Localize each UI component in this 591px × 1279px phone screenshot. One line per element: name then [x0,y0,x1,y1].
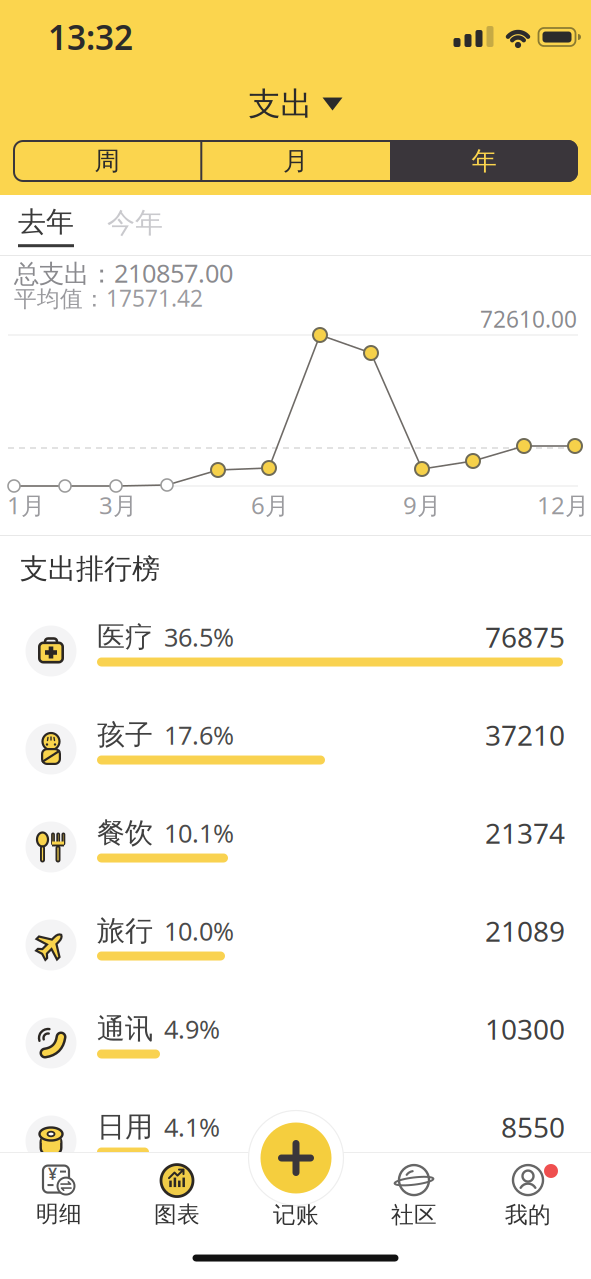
button[interactable]: ¥ [36,1164,82,1228]
button[interactable]: 社区 [391,1163,437,1229]
button[interactable]: 今年 [107,206,163,240]
button[interactable]: 记账 [260,1122,331,1193]
staticText: 支出排行榜 [20,552,160,586]
button[interactable]: 去年 [18,205,74,247]
staticText: 21374 [485,814,565,852]
staticText: 10.1% [164,816,234,850]
staticText: 9月 [403,489,441,521]
staticText: 支出 [248,84,312,124]
button[interactable]: 日用 [0,1092,591,1190]
button[interactable]: 月 [202,140,388,182]
staticText: 10300 [485,1010,565,1048]
staticText: 去年 [18,205,74,239]
button[interactable]: 餐饮 [0,798,591,896]
button[interactable]: 我的 [504,1165,556,1227]
button[interactable]: 支出 [248,84,342,124]
staticText: 周 [94,145,119,176]
button[interactable]: 图表 [154,1164,200,1228]
staticText: 4.1% [164,1110,220,1144]
staticText: 图表 [154,1201,200,1228]
staticText: 8550 [501,1108,565,1146]
staticText: 年 [471,145,496,176]
staticText: 餐饮 [97,816,153,850]
button[interactable]: 通讯 [0,994,591,1092]
button[interactable]: 周 [14,140,200,182]
staticText: 今年 [107,206,163,240]
staticText: 72610.00 [480,304,577,334]
staticText: 我的 [505,1201,551,1229]
staticText: 37210 [485,716,565,754]
button[interactable]: 年 [391,140,577,182]
staticText: 社区 [391,1201,437,1229]
staticText: 12月 [537,489,589,521]
staticText: 21089 [485,912,565,950]
staticText: ¥ [48,1163,57,1184]
staticText: 6月 [251,489,289,521]
staticText: 3月 [99,489,137,521]
staticText: 76875 [485,618,565,656]
staticText: 10.0% [164,914,234,948]
staticText: 36.5% [164,620,234,654]
staticText: 医疗 [97,620,153,654]
staticText: 17.6% [164,718,234,752]
staticText: 明细 [36,1200,82,1228]
staticText: 13:32 [48,15,133,59]
staticText: 旅行 [97,914,153,948]
staticText: 月 [283,145,308,176]
staticText: 4.9% [164,1012,220,1046]
staticText: 总支出：210857.00 [14,256,233,290]
staticText: 日用 [97,1110,153,1144]
button[interactable]: 旅行 [0,896,591,994]
staticText: 1月 [7,489,45,521]
button[interactable]: 医疗 [0,602,591,700]
staticText: 记账 [273,1201,319,1229]
staticText: 平均值：17571.42 [14,283,203,313]
staticText: 通讯 [97,1012,153,1046]
button[interactable]: 孩子 [0,700,591,798]
staticText: 孩子 [97,718,153,752]
